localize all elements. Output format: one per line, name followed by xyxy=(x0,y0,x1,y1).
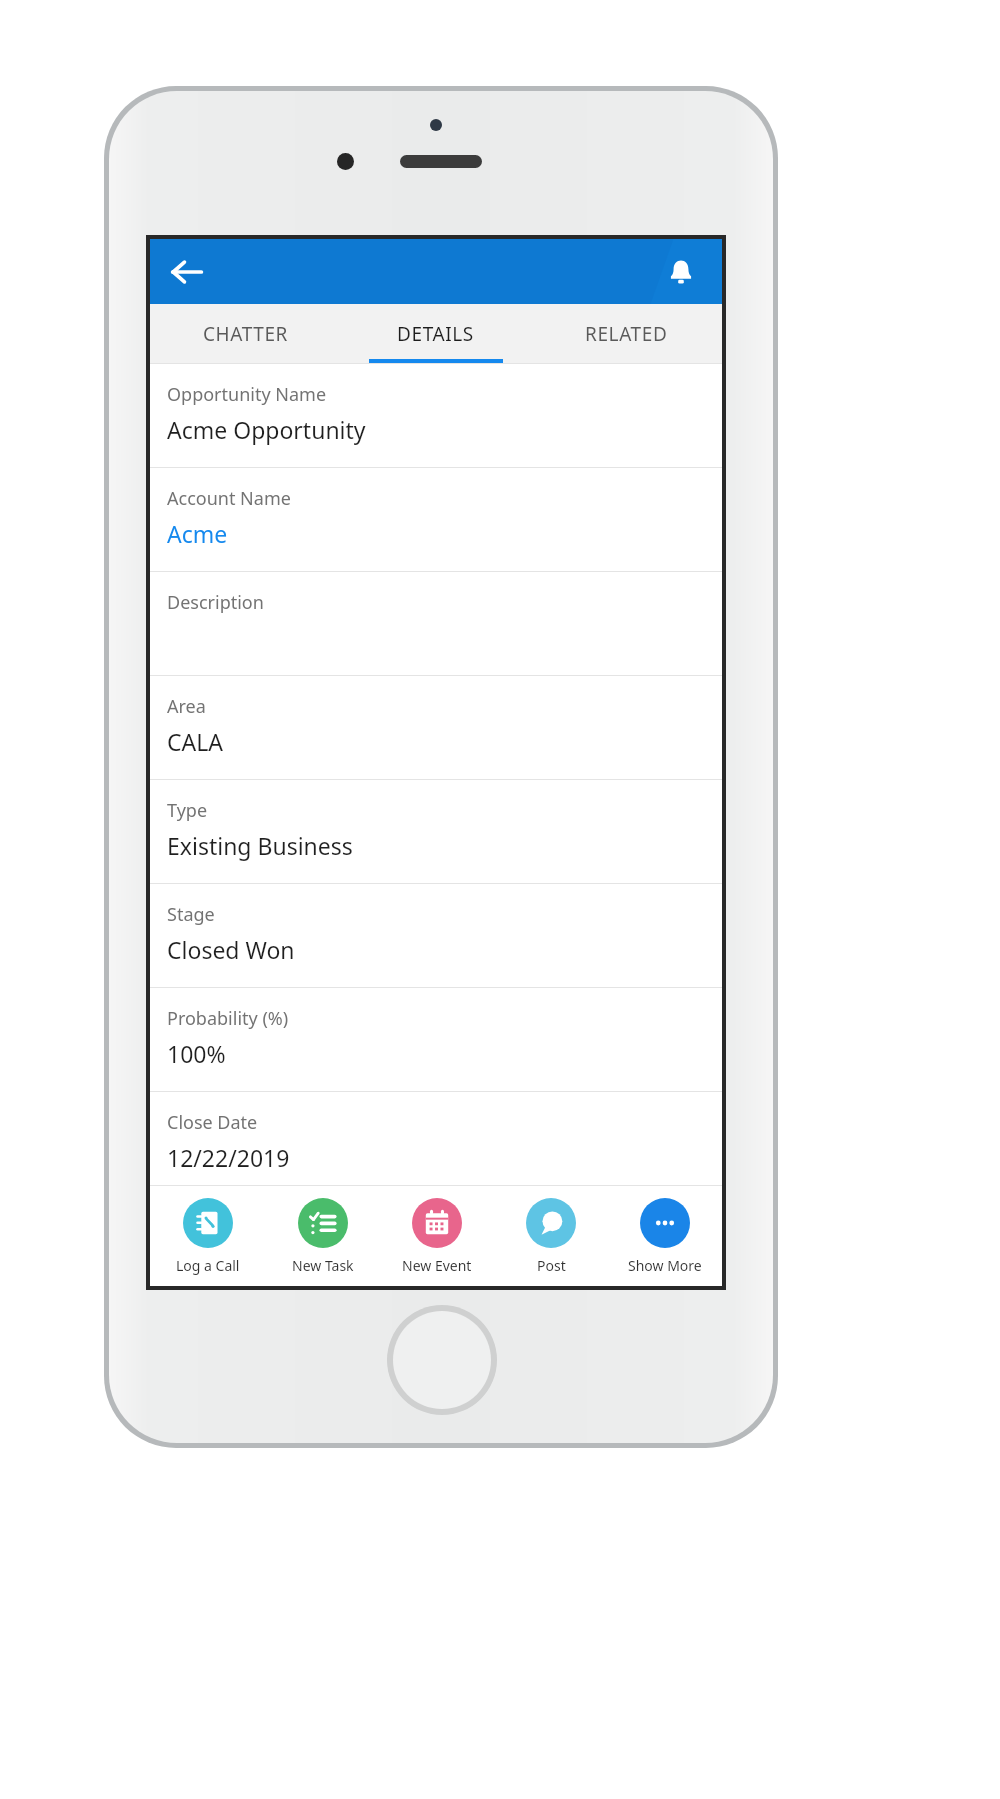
button[interactable]: Description xyxy=(150,572,722,676)
staticText: Probability (%) xyxy=(167,1006,289,1031)
staticText: Show More xyxy=(628,1256,702,1275)
button[interactable]: DETAILS xyxy=(340,304,531,363)
staticText: CALA xyxy=(167,726,223,757)
button[interactable]: Stage xyxy=(150,884,722,988)
button[interactable]: Back xyxy=(160,245,214,299)
button[interactable]: RELATED xyxy=(531,304,722,363)
button[interactable]: Log a Call xyxy=(150,1186,265,1286)
staticText: Description xyxy=(167,590,264,615)
staticText: Closed Won xyxy=(167,934,295,965)
staticText: Stage xyxy=(167,902,215,927)
staticText: 12/22/2019 xyxy=(167,1142,290,1173)
staticText: Existing Business xyxy=(167,830,353,861)
staticText: Post xyxy=(537,1256,566,1275)
staticText: CHATTER xyxy=(203,321,288,347)
button[interactable]: Probability (%) xyxy=(150,988,722,1092)
button[interactable]: Opportunity Name xyxy=(150,364,722,468)
staticText: Opportunity Name xyxy=(167,382,327,407)
button[interactable]: New Task xyxy=(265,1186,380,1286)
button[interactable]: Type xyxy=(150,780,722,884)
staticText: Account Name xyxy=(167,486,291,511)
staticText: Acme xyxy=(167,518,228,549)
button[interactable]: Close Date xyxy=(150,1092,722,1186)
button[interactable]: Notifications xyxy=(654,245,708,299)
button[interactable]: Account Name xyxy=(150,468,722,572)
button[interactable]: Post xyxy=(494,1186,608,1286)
staticText: Area xyxy=(167,694,206,719)
staticText: RELATED xyxy=(585,321,668,347)
staticText: Log a Call xyxy=(176,1256,240,1275)
staticText: DETAILS xyxy=(397,321,474,347)
button[interactable]: New Event xyxy=(380,1186,494,1286)
staticText: Close Date xyxy=(167,1110,258,1135)
staticText: New Task xyxy=(292,1256,354,1275)
staticText: 100% xyxy=(167,1038,226,1069)
button[interactable]: Area xyxy=(150,676,722,780)
staticText: New Event xyxy=(402,1256,472,1275)
button[interactable]: CHATTER xyxy=(150,304,340,363)
staticText: Type xyxy=(167,798,208,823)
button[interactable]: Show More xyxy=(608,1186,722,1286)
staticText: Acme Opportunity xyxy=(167,414,366,445)
